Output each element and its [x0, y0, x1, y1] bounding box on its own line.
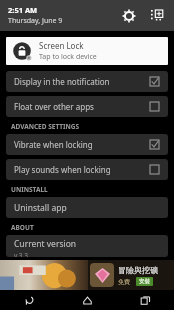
- staticText: Tap to lock device: [39, 52, 97, 62]
- button[interactable]: Vibrate when locking: [6, 134, 168, 155]
- staticText: ABOUT: [11, 223, 34, 232]
- staticText: 免費: [118, 278, 130, 286]
- staticText: UNINSTALL: [11, 185, 48, 194]
- button[interactable]: Settings: [118, 5, 140, 27]
- staticText: Screen Lock: [39, 40, 84, 51]
- staticText: Display in the notification: [14, 76, 150, 87]
- button[interactable]: Recent apps: [116, 290, 174, 310]
- staticText: Vibrate when locking: [14, 139, 150, 150]
- button[interactable]: Back: [0, 290, 58, 310]
- staticText: Play sounds when locking: [14, 164, 150, 175]
- staticText: Float over other apps: [14, 101, 150, 112]
- staticText: 冒險與挖礦: [118, 265, 158, 275]
- button[interactable]: Advertisement: [0, 260, 174, 290]
- staticText: ADVANCED SETTINGS: [11, 122, 80, 131]
- button[interactable]: Display in the notification: [6, 71, 168, 92]
- button[interactable]: Float over other apps: [6, 96, 168, 117]
- button[interactable]: Quick settings: [146, 5, 168, 27]
- staticText: 安裝: [139, 278, 150, 285]
- button[interactable]: Uninstall app: [6, 197, 168, 218]
- staticText: Current version: [14, 238, 77, 250]
- button[interactable]: Current version: [6, 235, 168, 257]
- button[interactable]: Play sounds when locking: [6, 159, 168, 180]
- staticText: 2:51 AM: [8, 5, 38, 15]
- staticText: Uninstall app: [14, 202, 67, 214]
- staticText: Thursday, June 9: [8, 16, 63, 26]
- button[interactable]: Screen Lock: [6, 37, 168, 65]
- staticText: v.3.3: [14, 251, 28, 257]
- button[interactable]: Home: [58, 290, 116, 310]
